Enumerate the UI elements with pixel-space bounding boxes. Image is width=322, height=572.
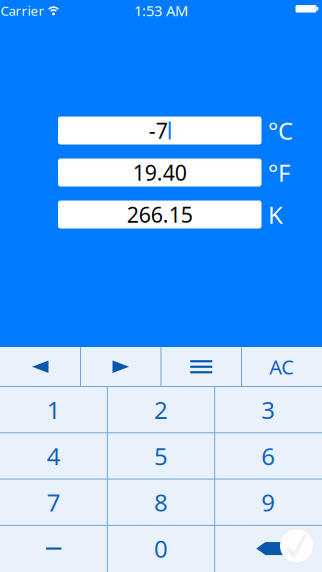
button[interactable]: 5 bbox=[107, 433, 215, 479]
staticText: AC bbox=[269, 353, 294, 380]
staticText: 6 bbox=[261, 440, 275, 472]
staticText: 4 bbox=[47, 440, 61, 472]
staticText: 3 bbox=[261, 394, 275, 426]
staticText: 19.40 bbox=[133, 158, 187, 187]
staticText: 5 bbox=[154, 440, 168, 472]
staticText: 0 bbox=[154, 533, 168, 564]
staticText: °F bbox=[268, 157, 290, 188]
button[interactable]: Menu bbox=[161, 347, 241, 386]
staticText: °C bbox=[268, 115, 293, 146]
button[interactable]: Fahrenheit bbox=[58, 158, 261, 186]
button[interactable]: 3 bbox=[215, 386, 322, 433]
button[interactable]: Previous field bbox=[0, 347, 80, 386]
button[interactable]: 8 bbox=[107, 479, 215, 525]
button[interactable]: 4 bbox=[0, 433, 107, 479]
staticText: -7 bbox=[149, 116, 168, 145]
button[interactable]: 2 bbox=[107, 386, 215, 433]
staticText: Carrier bbox=[0, 2, 44, 19]
button[interactable]: 7 bbox=[0, 479, 107, 525]
button[interactable]: Celsius bbox=[58, 116, 261, 144]
staticText: 266.15 bbox=[127, 200, 193, 229]
button[interactable]: Negative sign bbox=[0, 525, 107, 572]
staticText: 8 bbox=[154, 486, 168, 518]
staticText: 2 bbox=[154, 394, 168, 426]
staticText: 1 bbox=[47, 394, 61, 426]
staticText: K bbox=[268, 199, 283, 230]
button[interactable]: Next field bbox=[80, 347, 161, 386]
button[interactable]: Delete bbox=[215, 525, 322, 572]
button[interactable]: 1 bbox=[0, 386, 107, 433]
staticText: 9 bbox=[261, 486, 275, 518]
button[interactable]: 0 bbox=[107, 525, 215, 572]
button[interactable]: All clear bbox=[241, 347, 322, 386]
staticText: 7 bbox=[47, 486, 61, 518]
button[interactable]: 9 bbox=[215, 479, 322, 525]
button[interactable]: Kelvin bbox=[58, 200, 261, 228]
button[interactable]: 6 bbox=[215, 433, 322, 479]
staticText: 1:53 AM bbox=[134, 1, 188, 20]
